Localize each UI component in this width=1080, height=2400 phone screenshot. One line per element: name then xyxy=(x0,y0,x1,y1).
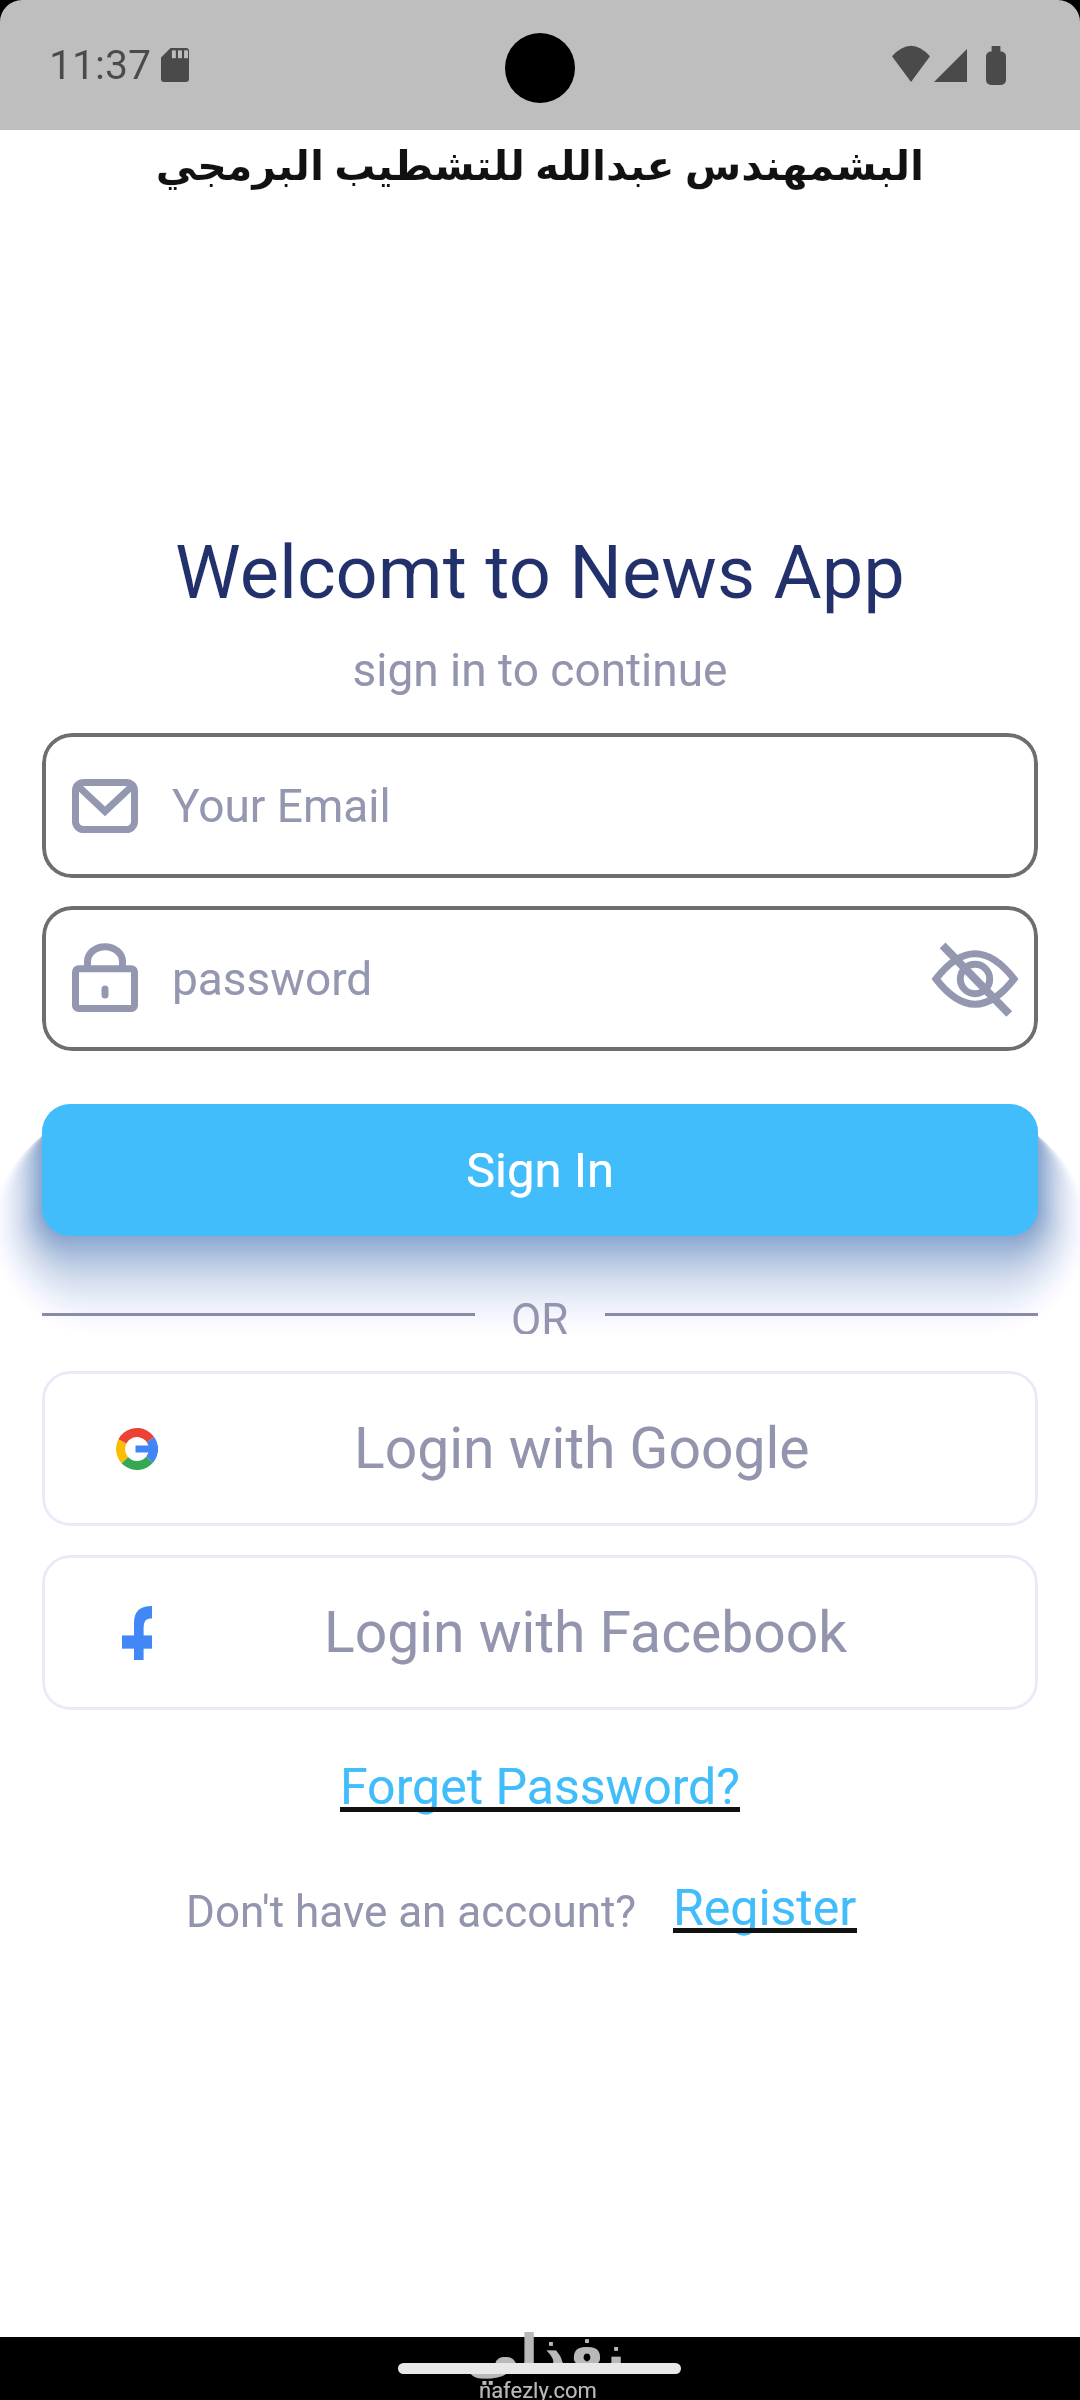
button[interactable]: Register xyxy=(673,1879,857,1938)
staticText: 11:37 xyxy=(49,41,152,89)
staticText: Welcomt to News App xyxy=(0,529,1080,616)
staticText: Don't have an account? xyxy=(186,1886,637,1938)
button[interactable]: Your Email xyxy=(42,733,1038,878)
button[interactable]: Login with Facebook xyxy=(42,1555,1038,1710)
staticText: Login with Google xyxy=(354,1415,810,1482)
button[interactable]: Show password xyxy=(920,924,1030,1034)
staticText: Forget Password? xyxy=(340,1758,740,1817)
button[interactable]: Login with Google xyxy=(42,1371,1038,1526)
button[interactable]: Forget Password? xyxy=(340,1758,740,1817)
staticText: نفذلي xyxy=(466,2324,626,2385)
staticText: Register xyxy=(673,1879,857,1938)
staticText: sign in to continue xyxy=(0,643,1080,697)
staticText: البشمهندس عبدالله للتشطيب البرمجي xyxy=(0,142,1080,190)
staticText: OR xyxy=(511,1294,569,1334)
staticText: nafezly.com xyxy=(479,2378,597,2400)
staticText: Login with Facebook xyxy=(324,1599,848,1666)
staticText: password xyxy=(172,952,373,1006)
button[interactable]: password xyxy=(42,906,1038,1051)
staticText: Your Email xyxy=(172,779,391,833)
button[interactable]: Sign In xyxy=(42,1104,1038,1236)
staticText: Sign In xyxy=(466,1142,615,1199)
